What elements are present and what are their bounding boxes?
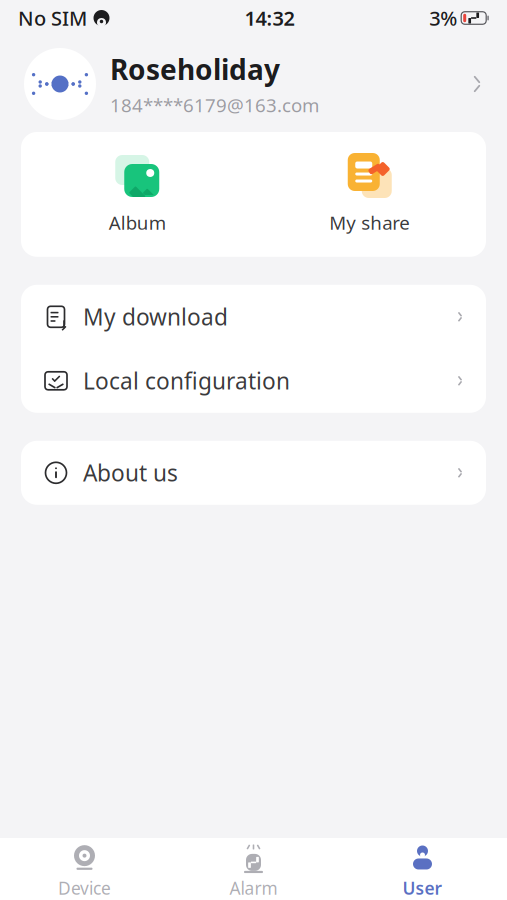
- button[interactable]: My download: [21, 285, 486, 349]
- staticText: Album: [109, 210, 166, 235]
- button[interactable]: Local configuration: [21, 349, 486, 413]
- staticText: Alarm: [229, 876, 277, 899]
- staticText: About us: [83, 458, 178, 488]
- staticText: Device: [58, 876, 111, 899]
- button[interactable]: Alarm: [169, 836, 338, 900]
- button[interactable]: About us: [21, 441, 486, 505]
- staticText: Local configuration: [83, 366, 290, 396]
- button[interactable]: My share: [253, 132, 486, 257]
- staticText: No SIM: [18, 5, 87, 31]
- staticText: 184****6179@163.com: [110, 93, 319, 117]
- button[interactable]: Device: [0, 836, 169, 900]
- staticText: My download: [83, 302, 228, 332]
- staticText: Roseholiday: [110, 50, 280, 88]
- button[interactable]: User: [338, 836, 507, 900]
- button[interactable]: Roseholiday: [0, 36, 507, 132]
- staticText: My share: [329, 210, 410, 235]
- button[interactable]: Album: [21, 132, 253, 257]
- staticText: 3%: [429, 5, 457, 31]
- staticText: User: [402, 876, 442, 899]
- staticText: 14:32: [245, 5, 295, 31]
